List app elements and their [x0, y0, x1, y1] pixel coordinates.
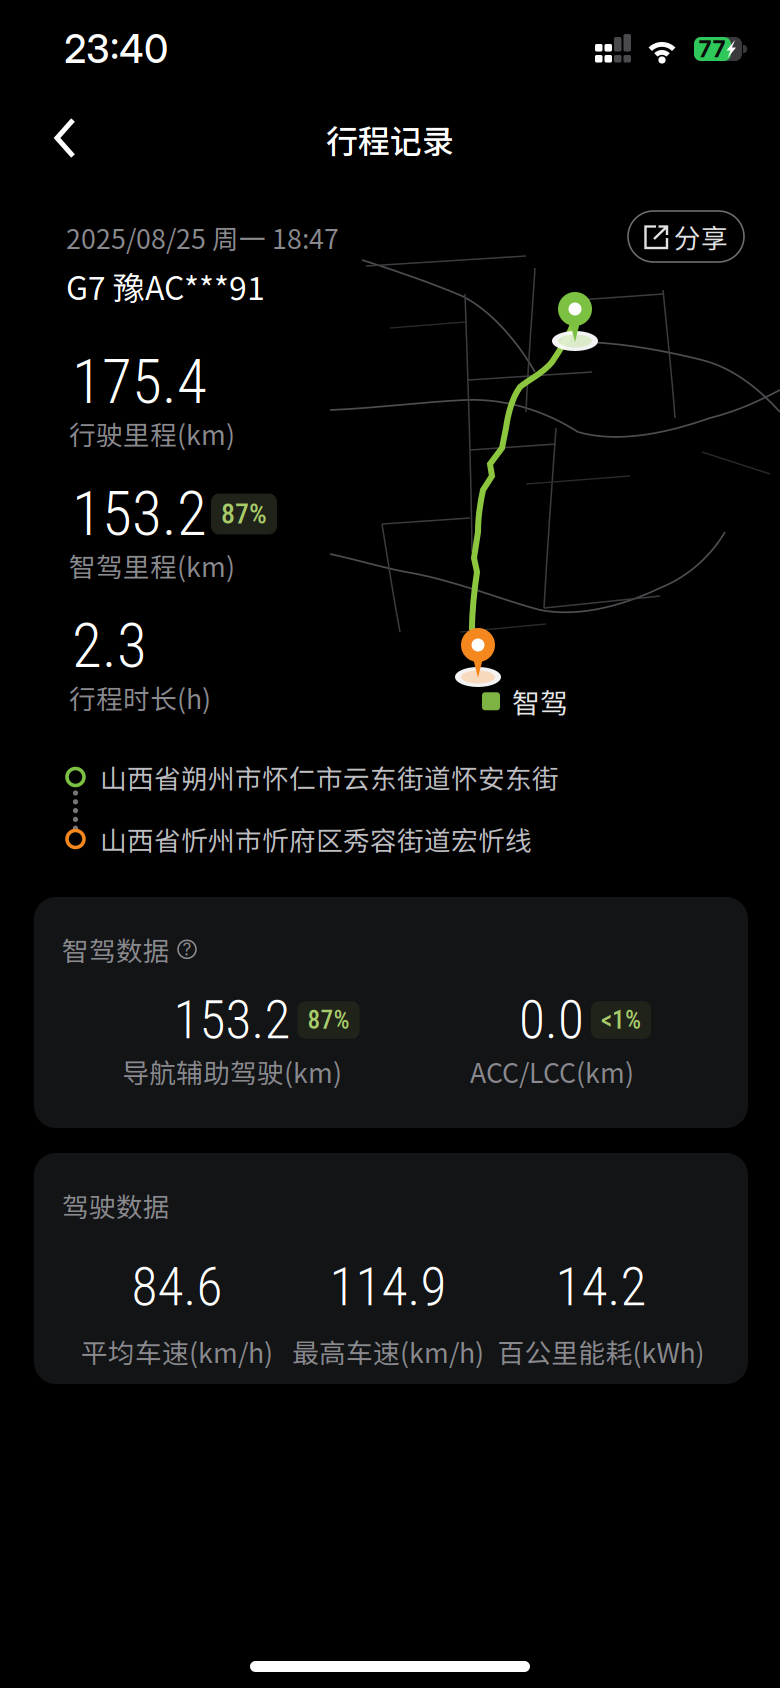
button[interactable]: Back [27, 100, 105, 178]
button[interactable]: 分享 [628, 211, 744, 262]
staticText: 平均车速(km/h) [81, 1332, 273, 1371]
staticText: 百公里能耗(kWh) [497, 1332, 704, 1371]
staticText: 分享 [674, 217, 728, 256]
staticText: 2.3 [72, 610, 147, 682]
staticText: 77 [698, 35, 725, 63]
staticText: 153.2 [173, 989, 290, 1051]
staticText: 23:40 [64, 26, 168, 72]
staticText: 驾驶数据 [62, 1186, 170, 1225]
staticText: 87% [307, 1005, 349, 1035]
staticText: 智驾 [512, 681, 568, 721]
staticText: 山西省忻州市忻府区秀容街道宏忻线 [100, 820, 532, 858]
staticText: 114.9 [329, 1256, 446, 1318]
staticText: 智驾数据 [62, 930, 170, 969]
staticText: 行程记录 [326, 116, 454, 162]
staticText: 0.0 [519, 989, 584, 1051]
staticText: 导航辅助驾驶(km) [122, 1052, 342, 1091]
staticText: 153.2 [72, 478, 207, 550]
staticText: 175.4 [72, 346, 207, 418]
staticText: 智驾里程(km) [69, 546, 235, 585]
staticText: 2025/08/25 周一 18:47 [66, 218, 339, 257]
staticText: 行程时长(h) [69, 678, 211, 717]
staticText: 87% [221, 498, 267, 530]
staticText: 最高车速(km/h) [292, 1332, 484, 1371]
staticText: <1% [601, 1005, 641, 1035]
staticText: 84.6 [131, 1256, 222, 1318]
staticText: 行驶里程(km) [69, 414, 235, 453]
staticText: ? [182, 939, 191, 960]
staticText: 山西省朔州市怀仁市云东街道怀安东街 [100, 758, 559, 796]
staticText: G7 豫AC***91 [66, 263, 265, 309]
staticText: ACC/LCC(km) [470, 1052, 634, 1091]
staticText: 14.2 [555, 1256, 646, 1318]
